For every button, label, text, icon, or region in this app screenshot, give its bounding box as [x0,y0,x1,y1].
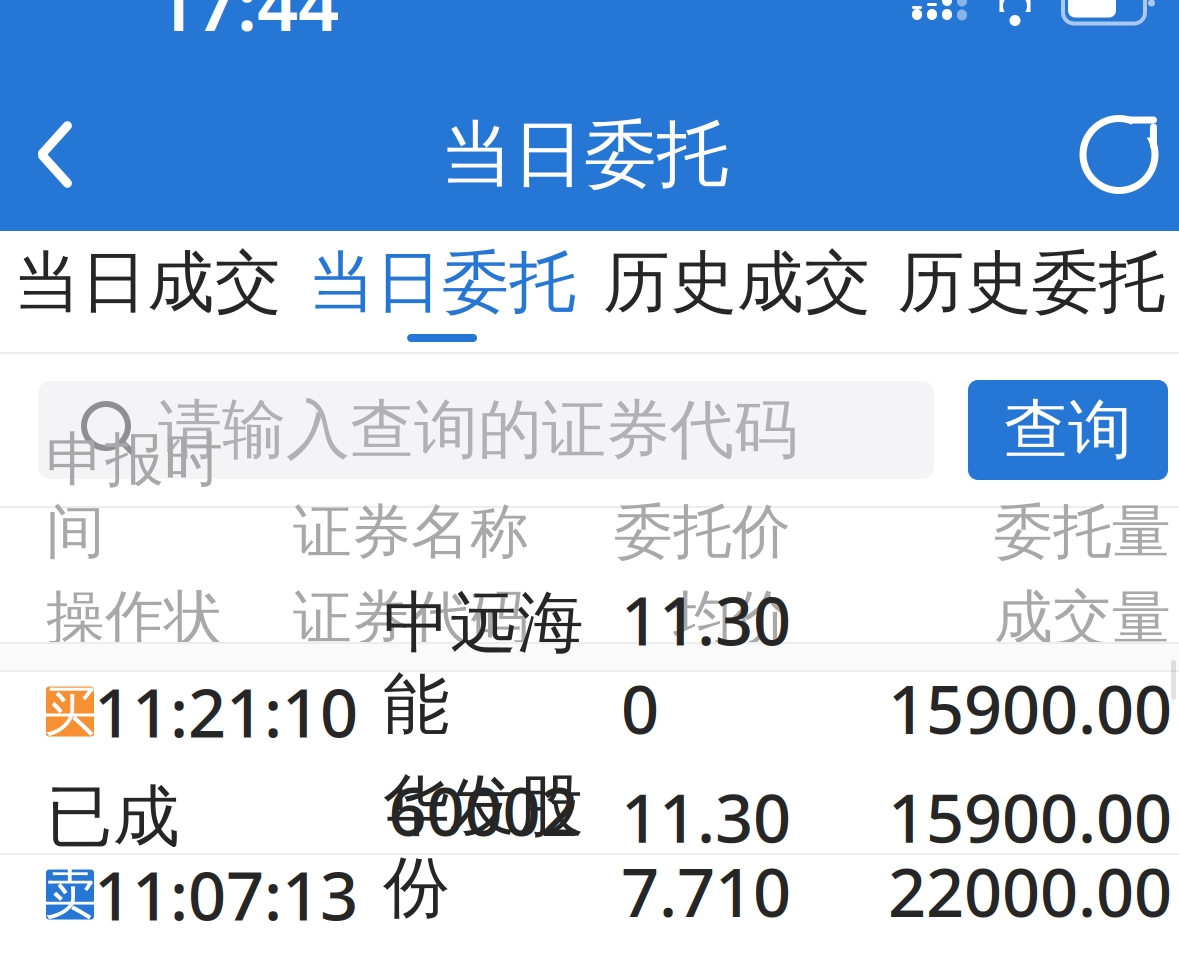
staticText: 买 [43,679,96,744]
button[interactable]: 请输入查询的证券代码 [38,381,934,479]
button[interactable]: 查询 [968,380,1168,480]
staticText: 操作状态 [46,582,223,726]
staticText: 成交量 [994,582,1171,654]
staticText: 11:07:13 [94,850,358,939]
staticText: 中远海能 [383,582,584,746]
staticText: 15900.00 [888,664,1172,752]
staticText: 委托量 [994,496,1171,568]
staticText: 证券代码 [293,582,529,654]
staticText: 11.300 [621,575,791,752]
staticText: 卖 [43,862,96,927]
staticText: 22000.00 [888,847,1172,935]
staticText: 均价 [673,582,791,654]
staticText: 7.710 [621,847,791,935]
staticText: 查询 [1004,391,1132,469]
button[interactable]: Back [0,89,110,219]
button[interactable]: Refresh [1059,89,1179,219]
button[interactable]: 当日成交 [0,231,295,352]
staticText: 已成 [46,776,180,858]
staticText: 17:44 [155,0,339,51]
staticText: 证券名称 [293,496,529,568]
staticText: 11:21:10 [94,667,358,756]
staticText: 请输入查询的证券代码 [158,391,798,469]
staticText: 600026 [388,766,578,943]
staticText: 当日委托 [440,110,728,199]
staticText: 华发股份 [383,765,584,929]
staticText: 委托价 [614,496,791,568]
button[interactable]: 历史委托 [884,231,1179,352]
button[interactable]: 买 [0,672,1179,853]
staticText: 申报时间 [46,424,223,568]
staticText: 当日委托 [308,242,576,323]
staticText: 11.300 [621,772,791,950]
button[interactable]: 卖 [0,855,1179,964]
staticText: 历史委托 [898,242,1166,323]
button[interactable]: 历史成交 [589,231,884,352]
staticText: 历史成交 [603,242,871,323]
staticText: 15900.00 [888,772,1172,861]
staticText: 当日成交 [13,242,281,323]
button[interactable]: 当日委托 [295,231,590,352]
